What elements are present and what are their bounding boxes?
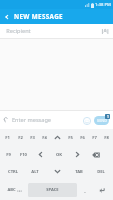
staticText: F10 bbox=[20, 152, 27, 158]
button[interactable]: F5 bbox=[64, 129, 76, 146]
staticText: SEND bbox=[97, 118, 107, 123]
button[interactable]: F10 bbox=[16, 146, 31, 163]
button[interactable]: Send message bbox=[94, 116, 109, 125]
button[interactable]: Navigate up bbox=[0, 10, 14, 24]
button[interactable]: Enter bbox=[92, 181, 111, 199]
button[interactable]: F9 bbox=[1, 146, 16, 163]
button[interactable]: CTRL bbox=[1, 163, 24, 180]
button[interactable]: F4 bbox=[38, 129, 50, 146]
staticText: . bbox=[84, 187, 86, 194]
staticText: SPACE bbox=[46, 187, 59, 193]
button[interactable]: Move down bbox=[46, 163, 68, 180]
staticText: OK bbox=[56, 152, 62, 158]
staticText: ABC bbox=[7, 187, 16, 193]
button[interactable]: Move left bbox=[31, 146, 49, 163]
staticText: 1 bbox=[107, 115, 109, 119]
button[interactable]: . bbox=[78, 181, 92, 199]
staticText: F9 bbox=[6, 152, 11, 158]
staticText: TAB bbox=[75, 169, 83, 175]
button[interactable]: Open contacts bbox=[98, 24, 112, 38]
staticText: Enter message bbox=[12, 116, 51, 124]
button[interactable]: F7 bbox=[88, 129, 100, 146]
staticText: F8 bbox=[104, 135, 109, 141]
button[interactable]: F1 bbox=[1, 129, 14, 146]
staticText: F2 bbox=[18, 135, 23, 141]
staticText: NEW MESSAGE bbox=[14, 12, 63, 21]
button[interactable]: TAB bbox=[68, 163, 90, 180]
button[interactable]: Attach file bbox=[0, 114, 12, 126]
staticText: CTRL bbox=[8, 169, 18, 175]
button[interactable]: DEL bbox=[90, 163, 112, 180]
staticText: F5 bbox=[68, 135, 73, 141]
staticText: F3 bbox=[30, 135, 35, 141]
button[interactable]: Enter message bbox=[12, 111, 80, 129]
button[interactable]: ALT bbox=[24, 163, 46, 180]
staticText: F4 bbox=[42, 135, 47, 141]
staticText: Recipient bbox=[6, 27, 31, 35]
button[interactable]: F2 bbox=[14, 129, 26, 146]
button[interactable]: F6 bbox=[76, 129, 88, 146]
staticText: ALT bbox=[31, 169, 39, 175]
button[interactable]: OK bbox=[49, 146, 68, 163]
button[interactable]: Move right bbox=[68, 146, 86, 163]
button[interactable]: F3 bbox=[26, 129, 38, 146]
button[interactable]: Move up bbox=[50, 129, 64, 146]
button[interactable]: F8 bbox=[100, 129, 112, 146]
button[interactable]: Insert emoji bbox=[80, 114, 93, 127]
button[interactable]: SPACE bbox=[28, 183, 77, 197]
button[interactable]: ABC bbox=[2, 181, 27, 199]
button[interactable]: Recipient bbox=[0, 24, 113, 38]
staticText: F7 bbox=[92, 135, 97, 141]
staticText: F6 bbox=[80, 135, 85, 141]
button[interactable]: Backspace bbox=[86, 146, 105, 163]
staticText: DEL bbox=[97, 169, 105, 175]
staticText: 1:38 PM bbox=[95, 2, 111, 8]
staticText: F1 bbox=[5, 135, 10, 141]
